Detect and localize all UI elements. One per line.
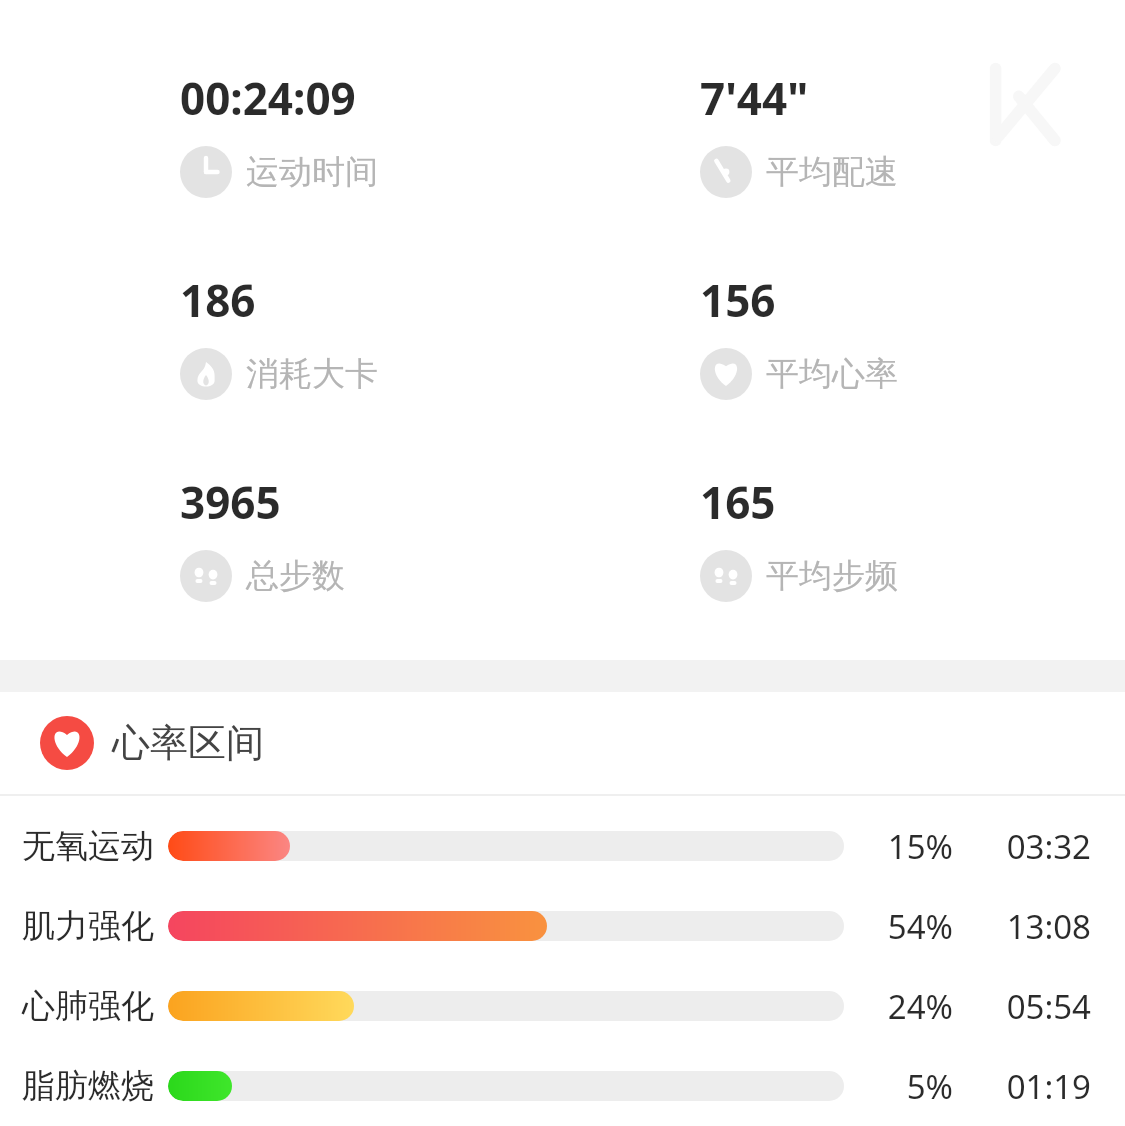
button[interactable]: 156 [700, 270, 898, 400]
button[interactable]: 3965 [180, 472, 345, 602]
staticText: 平均配速 [766, 151, 898, 193]
staticText: 5% [857, 1064, 953, 1109]
button[interactable]: 无氧运动 [0, 806, 1125, 886]
staticText: 无氧运动 [22, 825, 154, 867]
button[interactable]: Heart rate [0, 692, 1125, 794]
staticText: 3965 [180, 472, 281, 532]
staticText: 平均心率 [766, 353, 898, 395]
staticText: 心肺强化 [22, 985, 154, 1027]
staticText: 15% [857, 824, 953, 869]
button[interactable]: 165 [700, 472, 898, 602]
staticText: 24% [857, 984, 953, 1029]
staticText: 消耗大卡 [246, 353, 378, 395]
staticText: 平均步频 [766, 555, 898, 597]
staticText: 7'44" [700, 68, 809, 128]
other: Heart rate [40, 716, 94, 770]
staticText: 05:54 [971, 984, 1091, 1029]
staticText: 186 [180, 270, 256, 330]
staticText: 肌力强化 [22, 905, 154, 947]
staticText: 156 [700, 270, 776, 330]
staticText: 13:08 [971, 904, 1091, 949]
staticText: 01:19 [971, 1064, 1091, 1109]
button[interactable]: 心肺强化 [0, 966, 1125, 1046]
staticText: 03:32 [971, 824, 1091, 869]
staticText: 脂肪燃烧 [22, 1065, 154, 1107]
staticText: 总步数 [246, 555, 345, 597]
staticText: 00:24:09 [180, 68, 356, 128]
staticText: 运动时间 [246, 151, 378, 193]
button[interactable]: 7'44" [700, 68, 898, 198]
button[interactable]: 00:24:09 [180, 68, 378, 198]
staticText: 心率区间 [112, 719, 264, 767]
staticText: 54% [857, 904, 953, 949]
button[interactable]: 186 [180, 270, 378, 400]
button[interactable]: 脂肪燃烧 [0, 1046, 1125, 1126]
staticText: 165 [700, 472, 776, 532]
button[interactable]: 肌力强化 [0, 886, 1125, 966]
